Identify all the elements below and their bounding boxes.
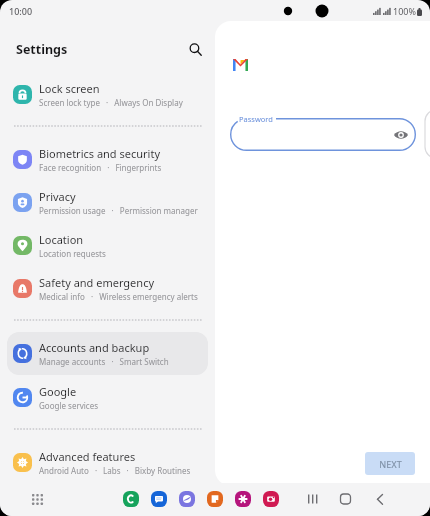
button[interactable]: NEXT: [365, 452, 415, 475]
staticText: 10:00: [9, 5, 33, 17]
staticText: Manage accounts · Smart Switch: [39, 356, 169, 367]
button[interactable]: Show password: [393, 127, 408, 142]
button[interactable]: phone: [123, 491, 139, 507]
button[interactable]: messages: [151, 491, 167, 507]
staticText: Screen lock type · Always On Display: [39, 97, 183, 108]
button[interactable]: flower: [235, 491, 251, 507]
button[interactable]: Search: [184, 38, 206, 60]
staticText: Biometrics and security: [39, 146, 160, 161]
staticText: Safety and emergency: [39, 275, 155, 290]
button[interactable]: Accounts and backup: [7, 332, 208, 375]
button[interactable]: Google: [7, 376, 208, 419]
staticText: NEXT: [379, 458, 402, 470]
staticText: Lock screen: [39, 81, 100, 96]
staticText: Android Auto · Labs · Bixby Routines: [39, 465, 191, 476]
staticText: Password: [239, 114, 273, 124]
staticText: Privacy: [39, 189, 76, 204]
button[interactable]: Lock screen: [7, 73, 208, 116]
staticText: Settings: [16, 41, 68, 58]
button[interactable]: Home: [339, 493, 352, 506]
staticText: Face recognition · Fingerprints: [39, 162, 162, 173]
staticText: Permission usage · Permission manager: [39, 205, 198, 216]
button[interactable]: Advanced features: [7, 441, 208, 484]
staticText: 100%: [393, 5, 416, 17]
staticText: Google: [39, 384, 77, 399]
button[interactable]: Biometrics and security: [7, 138, 208, 181]
button[interactable]: instagram: [263, 491, 279, 507]
button[interactable]: All apps: [32, 494, 43, 505]
button[interactable]: Recents: [306, 493, 318, 505]
button[interactable]: keep: [207, 491, 223, 507]
button[interactable]: Back: [374, 493, 386, 505]
staticText: Google services: [39, 400, 99, 411]
button[interactable]: Privacy: [7, 181, 208, 224]
staticText: Advanced features: [39, 449, 136, 464]
staticText: Accounts and backup: [39, 340, 150, 355]
staticText: Location: [39, 232, 84, 247]
staticText: Medical info · Wireless emergency alerts: [39, 291, 198, 302]
staticText: Location requests: [39, 248, 106, 259]
button[interactable]: internet: [179, 491, 195, 507]
button[interactable]: Location: [7, 224, 208, 267]
button[interactable]: Safety and emergency: [7, 267, 208, 310]
